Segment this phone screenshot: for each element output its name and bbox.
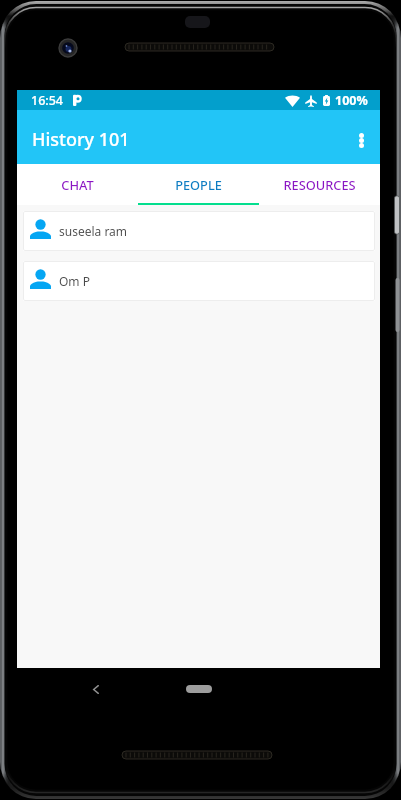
button[interactable]: Back <box>80 673 112 705</box>
staticText: CHAT <box>61 176 94 193</box>
staticText: History 101 <box>32 127 130 152</box>
button[interactable]: PEOPLE <box>138 164 259 205</box>
staticText: suseela ram <box>59 223 128 239</box>
button[interactable]: RESOURCES <box>259 164 380 205</box>
staticText: PEOPLE <box>175 176 222 193</box>
button[interactable]: CHAT <box>17 164 138 205</box>
button[interactable]: More options <box>339 118 383 162</box>
staticText: 100% <box>335 92 368 109</box>
button[interactable]: Om P <box>23 261 375 301</box>
button[interactable]: suseela ram <box>23 211 375 251</box>
staticText: Om P <box>59 273 90 289</box>
button[interactable]: Home <box>186 685 212 693</box>
staticText: RESOURCES <box>283 176 356 193</box>
staticText: 16:54 <box>31 92 64 109</box>
